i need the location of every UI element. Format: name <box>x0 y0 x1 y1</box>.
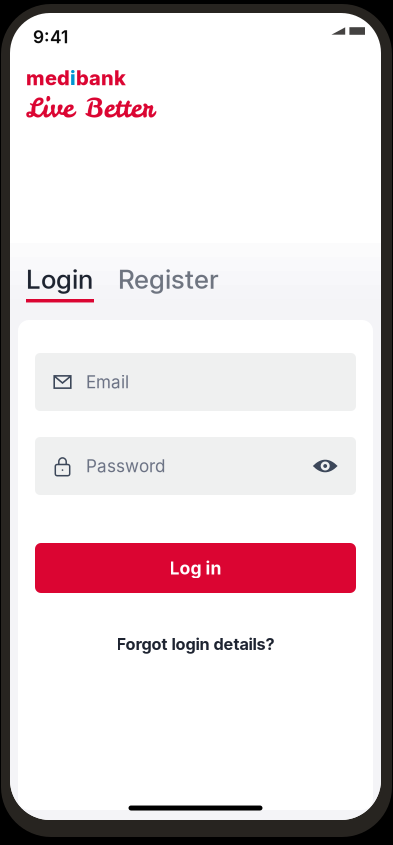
button[interactable]: Register <box>94 263 229 295</box>
button[interactable]: Forgot login details? <box>35 626 356 662</box>
staticText: Log in <box>169 557 221 579</box>
staticText: Register <box>118 263 219 295</box>
button[interactable]: Email <box>35 353 356 411</box>
staticText: Password <box>86 456 165 476</box>
staticText: i <box>70 66 76 90</box>
staticText: bank <box>76 66 126 90</box>
staticText: Login <box>26 263 93 295</box>
staticText: med <box>26 66 70 90</box>
staticText: 9:41 <box>33 26 68 47</box>
staticText: Email <box>86 372 129 392</box>
button[interactable]: Log in <box>35 543 356 593</box>
button[interactable]: Password <box>35 437 356 495</box>
button[interactable]: Login <box>26 263 94 302</box>
staticText: Forgot login details? <box>116 634 274 654</box>
staticText: Live Better <box>26 90 154 126</box>
